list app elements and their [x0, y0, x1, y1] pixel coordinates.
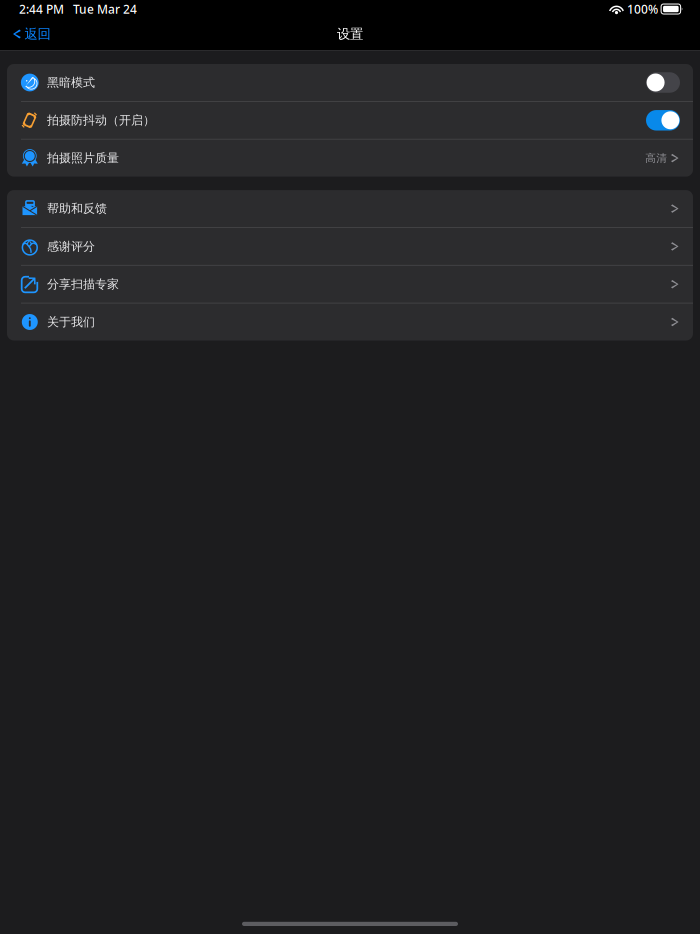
button[interactable]: 黑暗模式 [7, 64, 693, 101]
button[interactable]: 分享扫描专家 [7, 266, 693, 303]
button[interactable]: 帮助和反馈 [7, 190, 693, 227]
staticText: 帮助和反馈 [47, 201, 107, 216]
staticText: 关于我们 [47, 315, 95, 329]
staticText: 100% [627, 1, 658, 17]
button[interactable]: 返回 [7, 21, 57, 47]
staticText: 拍摄防抖动（开启） [47, 113, 155, 128]
staticText: 拍摄照片质量 [47, 151, 119, 165]
button[interactable]: 拍摄防抖动（开启） [7, 102, 693, 139]
staticText: 分享扫描专家 [47, 277, 119, 291]
staticText: 设置 [337, 26, 363, 42]
staticText: 黑暗模式 [47, 75, 95, 90]
staticText: Tue Mar 24 [73, 1, 137, 17]
button[interactable]: 拍摄照片质量 [7, 140, 693, 177]
staticText: 高清 [645, 151, 667, 165]
button[interactable]: 关于我们 [7, 303, 693, 340]
staticText: 2:44 PM [19, 1, 64, 17]
staticText: 返回 [25, 26, 51, 42]
button[interactable]: 感谢评分 [7, 228, 693, 265]
staticText: 感谢评分 [47, 239, 95, 254]
